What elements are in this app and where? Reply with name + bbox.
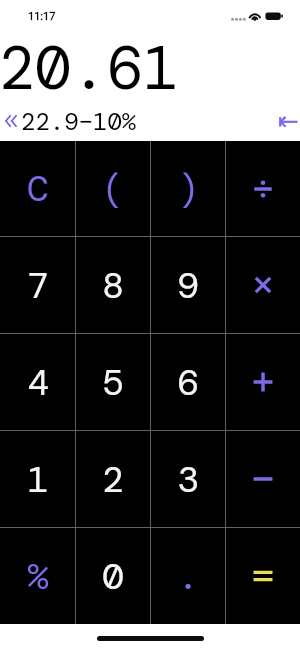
button[interactable]: 5 — [76, 334, 150, 430]
button[interactable]: 6 — [151, 334, 225, 430]
button[interactable]: 1 — [0, 431, 75, 527]
button[interactable]: ( — [76, 141, 150, 236]
button[interactable]: Divide — [226, 141, 300, 236]
staticText: . — [177, 553, 199, 600]
staticText: 2 — [102, 456, 124, 503]
button[interactable]: 3 — [151, 431, 225, 527]
staticText: C — [27, 165, 49, 212]
staticText: ( — [102, 165, 124, 212]
button[interactable]: Equals — [226, 528, 300, 624]
button[interactable]: 22.9−10% — [0, 106, 137, 136]
button[interactable]: Multiply — [226, 237, 300, 333]
staticText: 22.9−10% — [21, 106, 137, 136]
staticText: 9 — [177, 262, 199, 309]
button[interactable]: % — [0, 528, 75, 624]
staticText: 20.61 — [0, 29, 179, 107]
button[interactable]: . — [151, 528, 225, 624]
staticText: 5 — [102, 359, 124, 406]
button[interactable]: Subtract — [226, 431, 300, 527]
staticText: 8 — [102, 262, 124, 309]
button[interactable]: 9 — [151, 237, 225, 333]
button[interactable]: 7 — [0, 237, 75, 333]
button[interactable]: 4 — [0, 334, 75, 430]
staticText: 1 — [27, 456, 49, 503]
button[interactable]: 0 — [76, 528, 150, 624]
button[interactable]: ) — [151, 141, 225, 236]
staticText: 0 — [102, 553, 124, 600]
staticText: 6 — [177, 359, 199, 406]
staticText: ) — [177, 165, 199, 212]
button[interactable]: Undo — [272, 109, 300, 135]
button[interactable]: C — [0, 141, 75, 236]
staticText: 4 — [27, 359, 49, 406]
button[interactable]: Add — [226, 334, 300, 430]
staticText: 11:17 — [28, 10, 56, 23]
staticText: 7 — [27, 262, 49, 309]
staticText: % — [27, 553, 49, 600]
button[interactable]: 8 — [76, 237, 150, 333]
button[interactable]: 2 — [76, 431, 150, 527]
staticText: 3 — [177, 456, 199, 503]
